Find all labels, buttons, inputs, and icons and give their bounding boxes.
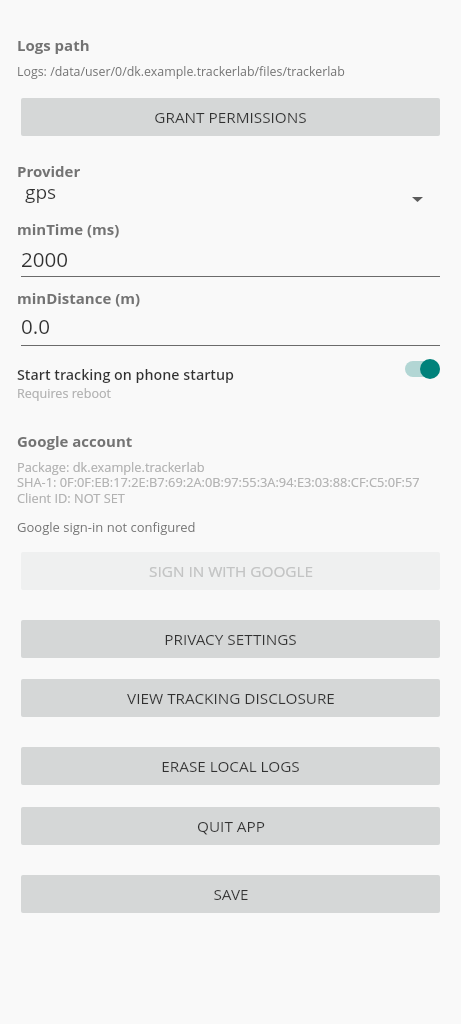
staticText: 2000 bbox=[21, 245, 69, 273]
staticText: PRIVACY SETTINGS bbox=[164, 629, 297, 650]
staticText: gps bbox=[25, 179, 57, 205]
staticText: SIGN IN WITH GOOGLE bbox=[149, 561, 313, 582]
button[interactable]: ERASE LOCAL LOGS bbox=[21, 747, 440, 785]
staticText: 0.0 bbox=[21, 312, 51, 340]
staticText: Requires reboot bbox=[17, 385, 112, 402]
staticText: Logs path bbox=[17, 35, 90, 55]
button[interactable]: SIGN IN WITH GOOGLE bbox=[21, 552, 440, 590]
staticText: Google sign-in not configured bbox=[17, 518, 196, 536]
other: Choose provider bbox=[412, 197, 423, 202]
button[interactable]: Start tracking on phone startup bbox=[405, 357, 440, 381]
staticText: Start tracking on phone startup bbox=[17, 365, 234, 384]
staticText: Package: dk.example.trackerlab SHA-1: 0F… bbox=[17, 458, 420, 507]
staticText: ERASE LOCAL LOGS bbox=[161, 756, 300, 777]
staticText: Google account bbox=[17, 431, 133, 451]
button[interactable]: VIEW TRACKING DISCLOSURE bbox=[21, 679, 440, 717]
button[interactable]: GRANT PERMISSIONS bbox=[21, 98, 440, 136]
button[interactable]: QUIT APP bbox=[21, 807, 440, 845]
staticText: minTime (ms) bbox=[17, 219, 120, 239]
staticText: Logs: /data/user/0/dk.example.trackerlab… bbox=[17, 63, 345, 80]
button[interactable]: SAVE bbox=[21, 875, 440, 913]
staticText: GRANT PERMISSIONS bbox=[154, 107, 307, 128]
button[interactable]: gps bbox=[17, 181, 444, 207]
staticText: Provider bbox=[17, 161, 81, 181]
button[interactable]: PRIVACY SETTINGS bbox=[21, 620, 440, 658]
staticText: QUIT APP bbox=[197, 816, 265, 837]
staticText: SAVE bbox=[213, 884, 249, 905]
staticText: minDistance (m) bbox=[17, 288, 141, 308]
staticText: VIEW TRACKING DISCLOSURE bbox=[127, 688, 335, 709]
